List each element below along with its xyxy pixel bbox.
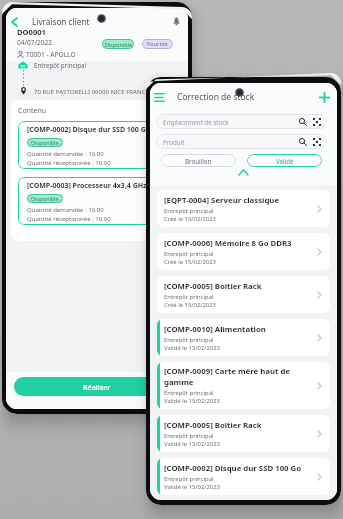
staticText: Emplacement de stock — [163, 118, 229, 126]
staticText: Entrepôt principal — [164, 250, 214, 258]
staticText: [COMP-0003] Processeur 4x3,4 GHz — [27, 181, 147, 191]
staticText: Contenu — [18, 106, 47, 116]
staticText: Entrepôt principal — [34, 61, 87, 69]
button[interactable]: Disponible — [102, 39, 134, 49]
button[interactable]: [COMP-0003] Processeur 4x3,4 GHz — [18, 177, 177, 225]
staticText: [EQPT-0004] Serveur classique — [164, 195, 280, 206]
button[interactable]: [COMP-0009] Carte mère haut de gamme — [157, 362, 330, 409]
staticText: Créé le 15/02/2023 — [164, 301, 216, 309]
staticText: Disponible — [31, 195, 59, 203]
staticText: Entrepôt principal — [164, 389, 214, 397]
staticText: Validé le 15/02/2023 — [164, 397, 220, 405]
button[interactable]: [COMP-0010] Alimentation — [157, 319, 330, 356]
staticText: Entrepôt principal — [164, 336, 214, 344]
staticText: [COMP-0010] Alimentation — [164, 324, 266, 335]
staticText: Validé le 15/02/2023 — [164, 483, 220, 491]
staticText: Livraison client — [32, 16, 90, 27]
staticText: T0001 - APOLLO — [26, 50, 76, 59]
staticText: Correction de stock — [177, 91, 255, 103]
staticText: Entrepôt principal — [164, 432, 214, 440]
staticText: Entrepôt principal — [164, 293, 214, 301]
staticText: [COMP-0009] Carte mère haut de gamme — [164, 366, 307, 388]
staticText: Quantité demandée : 10.00 — [27, 150, 104, 158]
staticText: Validé le 15/02/2023 — [164, 440, 220, 448]
button[interactable]: [COMP-0005] Boîtier Rack — [157, 276, 330, 313]
button[interactable]: Menu — [151, 89, 167, 105]
staticText: [COMP-0005] Boîtier Rack — [164, 420, 262, 431]
staticText: DO0001 — [17, 27, 46, 37]
staticText: [COMP-0002] Disque dur SSD 100 Go — [164, 463, 302, 474]
staticText: Entrepôt principal — [164, 475, 214, 483]
button[interactable]: Retour — [8, 15, 21, 28]
staticText: Validé le 15/02/2023 — [164, 344, 220, 352]
button[interactable]: [COMP-0002] Disque dur SSD 100 Go — [18, 121, 177, 169]
staticText: [COMP-0002] Disque dur SSD 100 Go — [27, 125, 151, 135]
button[interactable]: [COMP-0002] Disque dur SSD 100 Go — [157, 458, 330, 495]
staticText: 70 RUE PASTORELLI 06000 NICE FRANCE — [34, 87, 149, 95]
staticText: Produit — [163, 138, 185, 146]
staticText: Entrepôt principal — [164, 207, 214, 215]
staticText: Quantité réceptionnée : 10.00 — [27, 215, 111, 223]
staticText: [COMP-0006] Mémoire 8 Go DDR3 — [164, 238, 292, 249]
button[interactable]: Validé — [247, 154, 322, 167]
staticText: 04/07/2022 — [17, 38, 53, 47]
button[interactable]: Produit — [156, 134, 327, 149]
staticText: Fournie — [147, 40, 168, 48]
button[interactable]: Réaliser — [14, 377, 180, 396]
staticText: Créé le 15/02/2023 — [164, 258, 216, 266]
button[interactable]: [COMP-0006] Mémoire 8 Go DDR3 — [157, 233, 330, 270]
staticText: Créé le 15/02/2023 — [164, 215, 216, 223]
staticText: Validé — [276, 157, 294, 165]
staticText: Quantité demandée : 10.00 — [27, 206, 104, 214]
button[interactable]: [COMP-0005] Boîtier Rack — [157, 415, 330, 452]
staticText: Disponible — [105, 41, 132, 48]
button[interactable]: [EQPT-0004] Serveur classique — [157, 190, 330, 227]
button[interactable]: Notifications — [169, 14, 183, 28]
staticText: Réaliser — [83, 382, 111, 392]
staticText: Brouillon — [185, 157, 212, 165]
button[interactable]: Ajouter — [316, 89, 332, 105]
button[interactable]: Brouillon — [161, 154, 236, 167]
staticText: Disponible — [31, 139, 59, 147]
button[interactable]: Emplacement de stock — [156, 114, 327, 129]
staticText: Quantité réceptionnée : 10.00 — [27, 159, 111, 167]
button[interactable]: Fournie — [142, 39, 173, 49]
staticText: [COMP-0005] Boîtier Rack — [164, 281, 262, 292]
